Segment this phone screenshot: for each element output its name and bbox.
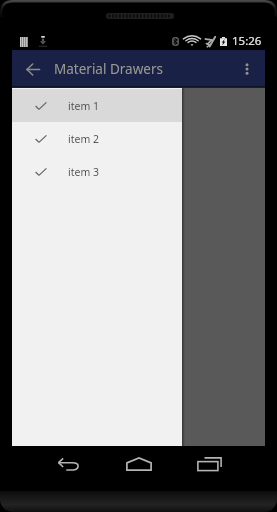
staticText: item 3 [68, 165, 99, 179]
staticText: Material Drawers [54, 60, 163, 78]
button[interactable]: Back [48, 444, 88, 484]
button[interactable]: Recent apps [189, 444, 229, 484]
button[interactable]: item 1 [12, 89, 182, 122]
staticText: item 1 [68, 99, 99, 113]
button[interactable]: Back [17, 53, 49, 85]
staticText: item 2 [68, 132, 99, 146]
button[interactable]: item 3 [12, 155, 182, 188]
button[interactable]: More options [232, 54, 262, 84]
button[interactable]: item 2 [12, 122, 182, 155]
button[interactable]: Home [119, 444, 159, 484]
staticText: 15:26 [232, 33, 262, 49]
